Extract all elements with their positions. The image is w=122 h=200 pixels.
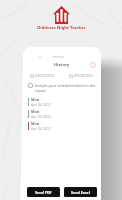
button[interactable]: 03/08/2022	[69, 73, 94, 78]
staticText: Apr 04 2022	[31, 114, 52, 119]
staticText: Apr 04 2022	[31, 126, 52, 131]
button[interactable]: 04/07/2022	[30, 73, 55, 78]
button[interactable]: Send PDF	[27, 187, 60, 197]
staticText: Send PDF	[35, 190, 52, 195]
button[interactable]: Include your scheduled dates in the repo…	[28, 83, 97, 93]
button[interactable]: Send Excel	[64, 187, 97, 197]
staticText: Mon	[31, 109, 39, 114]
button[interactable]: Refresh	[90, 62, 96, 68]
staticText: Include your scheduled dates in the repo…	[35, 83, 96, 93]
staticText: Send Excel	[71, 190, 90, 195]
staticText: Childcare Night Tracker	[36, 25, 86, 31]
button[interactable]: Mon	[28, 120, 97, 132]
button[interactable]: Mon	[28, 96, 97, 108]
staticText: 04/07/2022	[35, 73, 55, 78]
staticText: Mon	[31, 97, 39, 102]
staticText: Apr 04 2022	[31, 102, 52, 107]
staticText: Mon	[31, 121, 39, 126]
staticText: 03/08/2022	[74, 73, 94, 78]
button[interactable]: Mon	[28, 108, 97, 120]
staticText: History	[54, 62, 70, 68]
